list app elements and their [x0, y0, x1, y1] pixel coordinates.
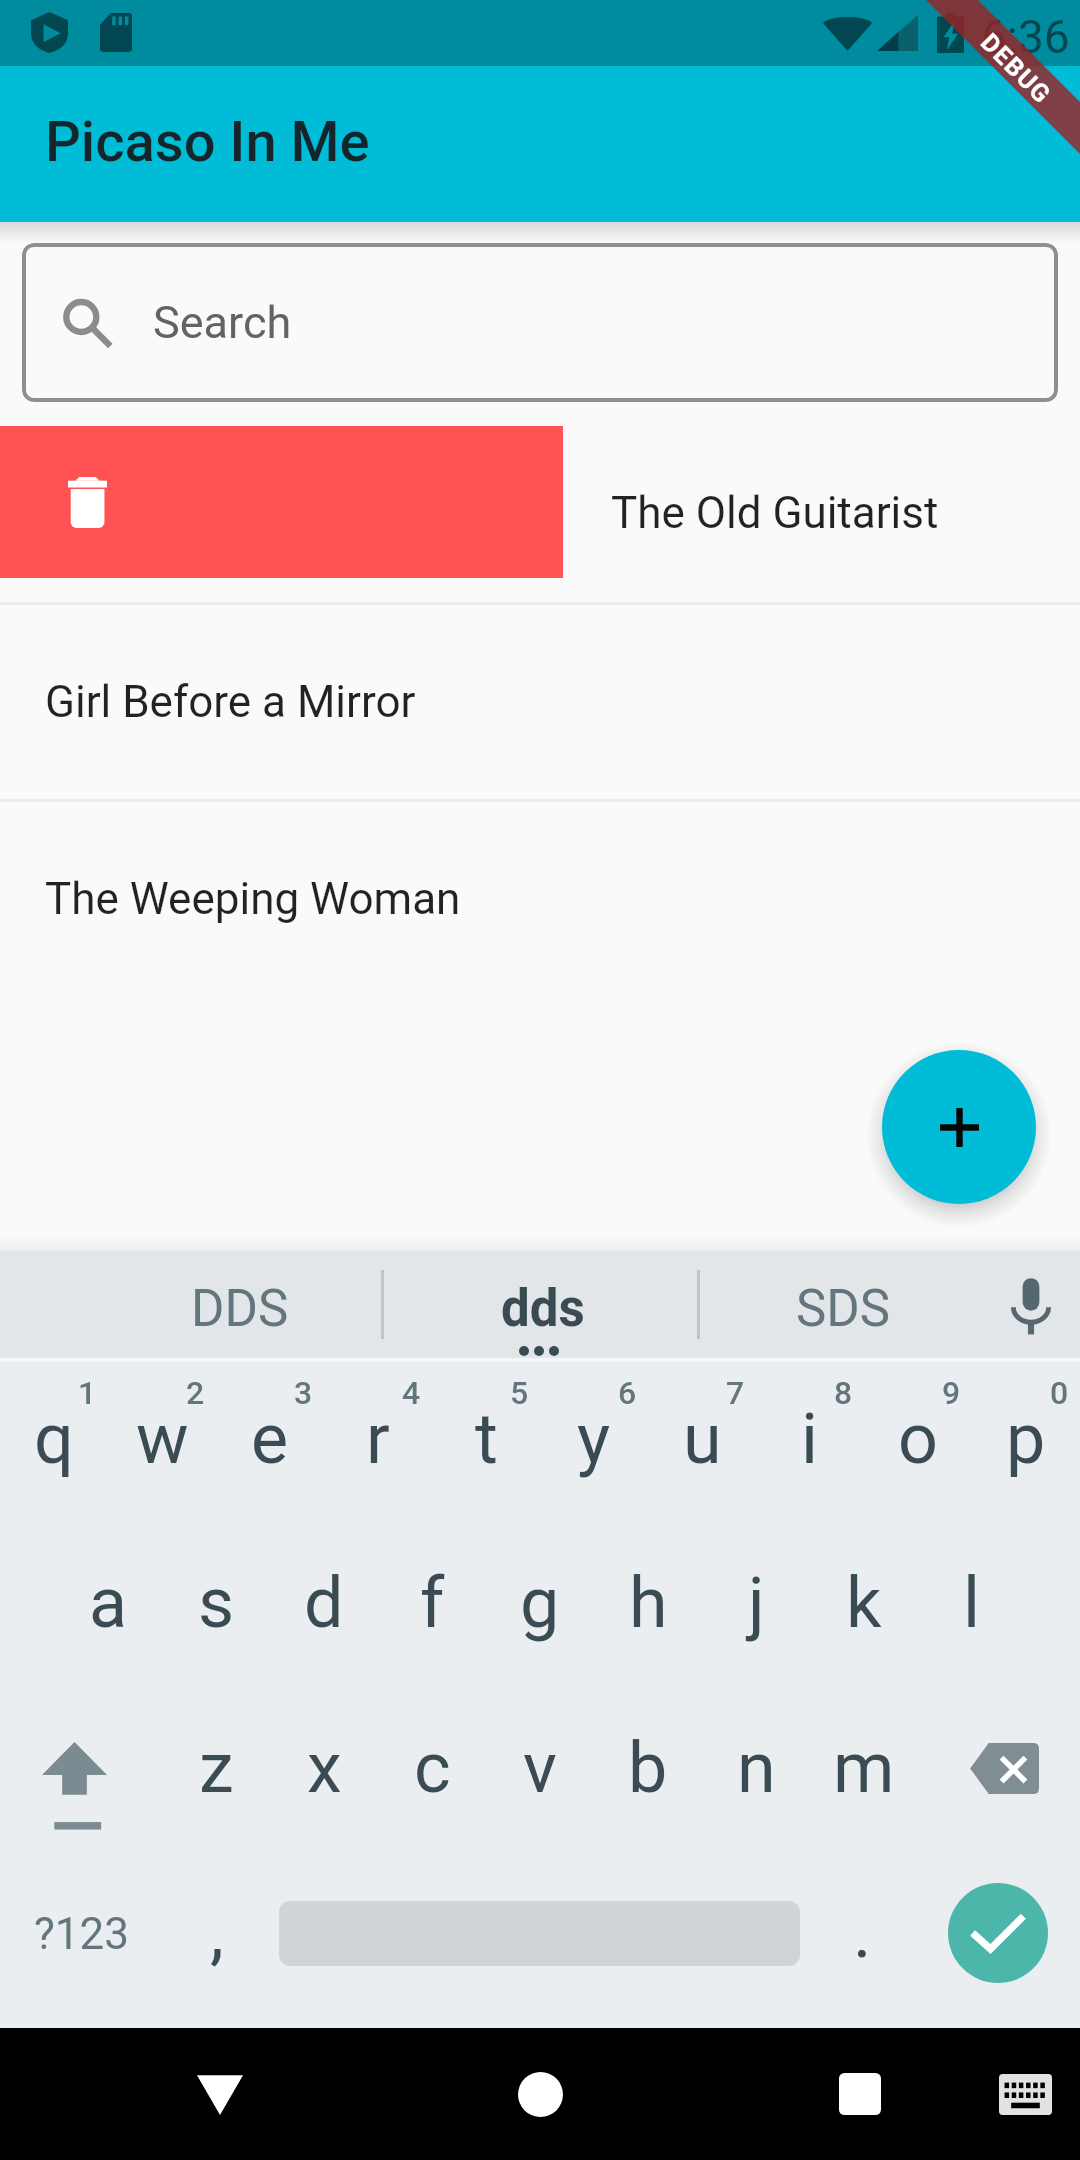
staticText: u: [683, 1398, 722, 1480]
staticText: 5: [510, 1374, 529, 1412]
staticText: 4: [402, 1374, 421, 1412]
button[interactable]: Backspace: [930, 1691, 1080, 1858]
staticText: a: [89, 1562, 128, 1644]
staticText: o: [898, 1398, 938, 1480]
staticText: 3: [294, 1374, 313, 1412]
staticText: j: [748, 1562, 765, 1644]
staticText: l: [963, 1562, 981, 1644]
button[interactable]: z: [162, 1691, 270, 1858]
staticText: q: [34, 1398, 74, 1480]
staticText: DEBUG: [975, 28, 1057, 110]
staticText: 7: [726, 1374, 745, 1412]
button[interactable]: Home: [480, 2028, 600, 2160]
staticText: dds: [501, 1279, 585, 1339]
button[interactable]: Girl Before a Mirror: [0, 605, 1080, 799]
button[interactable]: Back: [160, 2028, 280, 2160]
staticText: p: [1006, 1398, 1046, 1480]
button[interactable]: l: [918, 1526, 1026, 1693]
button[interactable]: DDS: [131, 1263, 229, 1355]
staticText: x: [307, 1727, 342, 1809]
staticText: m: [833, 1727, 895, 1809]
staticText: ,: [210, 1892, 224, 1974]
button[interactable]: 2: [108, 1362, 216, 1529]
button[interactable]: f: [378, 1526, 486, 1693]
button[interactable]: The Weeping Woman: [0, 802, 1080, 996]
staticText: 0: [1050, 1374, 1069, 1412]
staticText: Search: [153, 296, 292, 349]
button[interactable]: Search: [22, 243, 1058, 402]
staticText: s: [198, 1562, 235, 1644]
button[interactable]: k: [810, 1526, 918, 1693]
button[interactable]: 1: [0, 1362, 108, 1529]
button[interactable]: The Old Guitarist: [0, 426, 1080, 602]
button[interactable]: SDS: [736, 1263, 831, 1355]
staticText: The Weeping Woman: [45, 873, 461, 925]
staticText: f: [420, 1562, 445, 1644]
button[interactable]: Shift: [0, 1691, 162, 1858]
button[interactable]: 0: [972, 1362, 1080, 1529]
staticText: ?123: [34, 1908, 129, 1960]
staticText: Girl Before a Mirror: [45, 676, 416, 728]
button[interactable]: g: [486, 1526, 594, 1693]
staticText: 9: [942, 1374, 961, 1412]
button[interactable]: 4: [324, 1362, 432, 1529]
button[interactable]: 6: [540, 1362, 648, 1529]
button[interactable]: Voice input: [1001, 1264, 1057, 1342]
staticText: t: [475, 1398, 498, 1480]
button[interactable]: h: [594, 1526, 702, 1693]
button[interactable]: d: [270, 1526, 378, 1693]
button[interactable]: 9: [864, 1362, 972, 1529]
button[interactable]: dds: [441, 1263, 525, 1355]
button[interactable]: 7: [648, 1362, 756, 1529]
staticText: c: [414, 1727, 451, 1809]
staticText: k: [846, 1562, 882, 1644]
button[interactable]: v: [486, 1691, 594, 1858]
button[interactable]: b: [594, 1691, 702, 1858]
button[interactable]: Recent apps: [800, 2028, 920, 2160]
staticText: 6: [618, 1374, 637, 1412]
staticText: 6:36: [981, 10, 1070, 64]
staticText: 2: [186, 1374, 205, 1412]
staticText: g: [520, 1562, 560, 1644]
staticText: SDS: [796, 1279, 891, 1339]
button[interactable]: n: [702, 1691, 810, 1858]
button[interactable]: a: [54, 1526, 162, 1693]
staticText: 8: [834, 1374, 853, 1412]
staticText: y: [577, 1398, 611, 1480]
button[interactable]: 5: [432, 1362, 540, 1529]
button[interactable]: 8: [756, 1362, 864, 1529]
staticText: Picaso In Me: [45, 109, 370, 175]
button[interactable]: m: [810, 1691, 918, 1858]
button[interactable]: ?123: [0, 1855, 162, 2022]
staticText: 1: [78, 1374, 97, 1412]
button[interactable]: ,: [162, 1855, 270, 2022]
staticText: n: [737, 1727, 776, 1809]
staticText: d: [304, 1562, 344, 1644]
staticText: e: [251, 1398, 289, 1480]
staticText: .: [853, 1892, 872, 1974]
button[interactable]: Enter: [948, 1883, 1048, 1983]
button[interactable]: 3: [216, 1362, 324, 1529]
button[interactable]: .: [812, 1855, 920, 2022]
button[interactable]: Add: [882, 1050, 1036, 1204]
staticText: i: [801, 1398, 819, 1480]
staticText: w: [136, 1398, 189, 1480]
staticText: v: [523, 1727, 557, 1809]
staticText: b: [628, 1727, 668, 1809]
staticText: DDS: [191, 1279, 289, 1339]
button[interactable]: c: [378, 1691, 486, 1858]
staticText: h: [629, 1562, 668, 1644]
staticText: r: [366, 1398, 390, 1480]
staticText: z: [199, 1727, 234, 1809]
staticText: The Old Guitarist: [611, 487, 939, 539]
button[interactable]: x: [270, 1691, 378, 1858]
button[interactable]: Switch keyboard: [975, 2028, 1075, 2160]
button[interactable]: s: [162, 1526, 270, 1693]
button[interactable]: j: [702, 1526, 810, 1693]
